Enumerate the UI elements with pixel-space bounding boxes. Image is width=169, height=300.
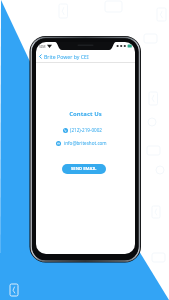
staticText: (212)-219-0002 <box>70 127 102 133</box>
button[interactable]: (212)-219-0002 <box>63 127 109 133</box>
button[interactable]: info@briteshot.com <box>56 140 115 146</box>
button[interactable]: Back <box>37 53 44 60</box>
staticText: Brite Power by CEI <box>44 53 89 60</box>
staticText: SIM <box>39 44 46 49</box>
staticText: SEND EMAIL <box>71 166 97 172</box>
staticText: Contact Us <box>69 110 102 118</box>
staticText: info@briteshot.com <box>64 140 107 146</box>
button[interactable]: SEND EMAIL <box>62 164 106 174</box>
